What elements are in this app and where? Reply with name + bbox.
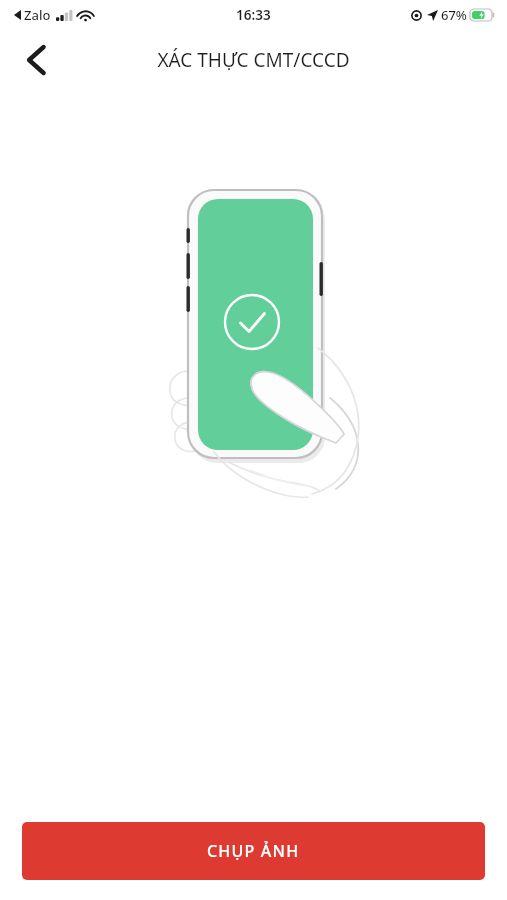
button[interactable]: CHỤP ẢNH — [22, 822, 485, 880]
staticText: CHỤP ẢNH — [207, 840, 300, 862]
staticText: Zalo — [24, 6, 51, 24]
staticText: 16:33 — [236, 6, 271, 24]
staticText: 67% — [441, 6, 467, 24]
staticText: XÁC THỰC CMT/CCCD — [157, 47, 350, 73]
button[interactable]: Back — [13, 36, 61, 84]
